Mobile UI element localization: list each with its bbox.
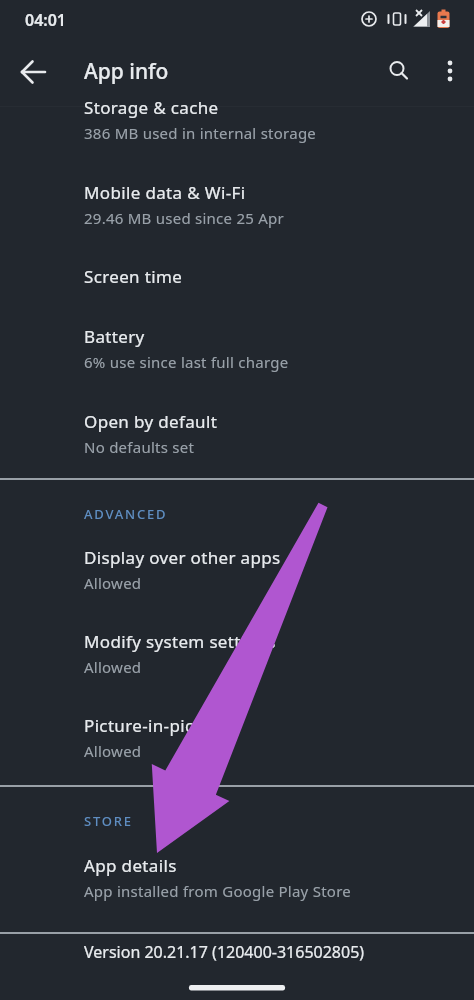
button[interactable]: Picture-in-picture bbox=[0, 702, 474, 786]
button[interactable]: Battery bbox=[0, 313, 474, 397]
staticText: Display over other apps bbox=[84, 546, 281, 569]
staticText: 386 MB used in internal storage bbox=[84, 123, 317, 143]
button[interactable]: Storage & cache bbox=[0, 84, 474, 168]
staticText: 04:01 bbox=[25, 9, 67, 31]
button[interactable]: Screen time bbox=[0, 253, 474, 314]
button[interactable]: Open by default bbox=[0, 398, 474, 482]
staticText: 29.46 MB used since 25 Apr bbox=[84, 208, 284, 228]
button[interactable]: Mobile data & Wi-Fi bbox=[0, 169, 474, 253]
button[interactable]: Modify system settings bbox=[0, 618, 474, 702]
staticText: Version 20.21.17 (120400-316502805) bbox=[84, 941, 365, 963]
button[interactable]: App details bbox=[0, 842, 474, 926]
staticText: App details bbox=[84, 854, 177, 877]
staticText: Mobile data & Wi-Fi bbox=[84, 181, 246, 204]
staticText: No defaults set bbox=[84, 437, 195, 457]
staticText: Screen time bbox=[84, 265, 183, 288]
staticText: Allowed bbox=[84, 573, 142, 593]
staticText: Allowed bbox=[84, 657, 142, 677]
staticText: 6% use since last full charge bbox=[84, 352, 289, 372]
button[interactable]: Display over other apps bbox=[0, 534, 474, 618]
staticText: Storage & cache bbox=[84, 96, 219, 119]
staticText: App info bbox=[84, 57, 169, 86]
staticText: App installed from Google Play Store bbox=[84, 881, 351, 901]
staticText: Picture-in-picture bbox=[84, 714, 228, 737]
staticText: Open by default bbox=[84, 410, 218, 433]
staticText: STORE bbox=[84, 812, 133, 830]
staticText: Allowed bbox=[84, 741, 142, 761]
staticText: Battery bbox=[84, 325, 145, 348]
button[interactable]: Version 20.21.17 (120400-316502805) bbox=[0, 932, 474, 977]
staticText: ADVANCED bbox=[84, 505, 168, 523]
staticText: Modify system settings bbox=[84, 630, 276, 653]
